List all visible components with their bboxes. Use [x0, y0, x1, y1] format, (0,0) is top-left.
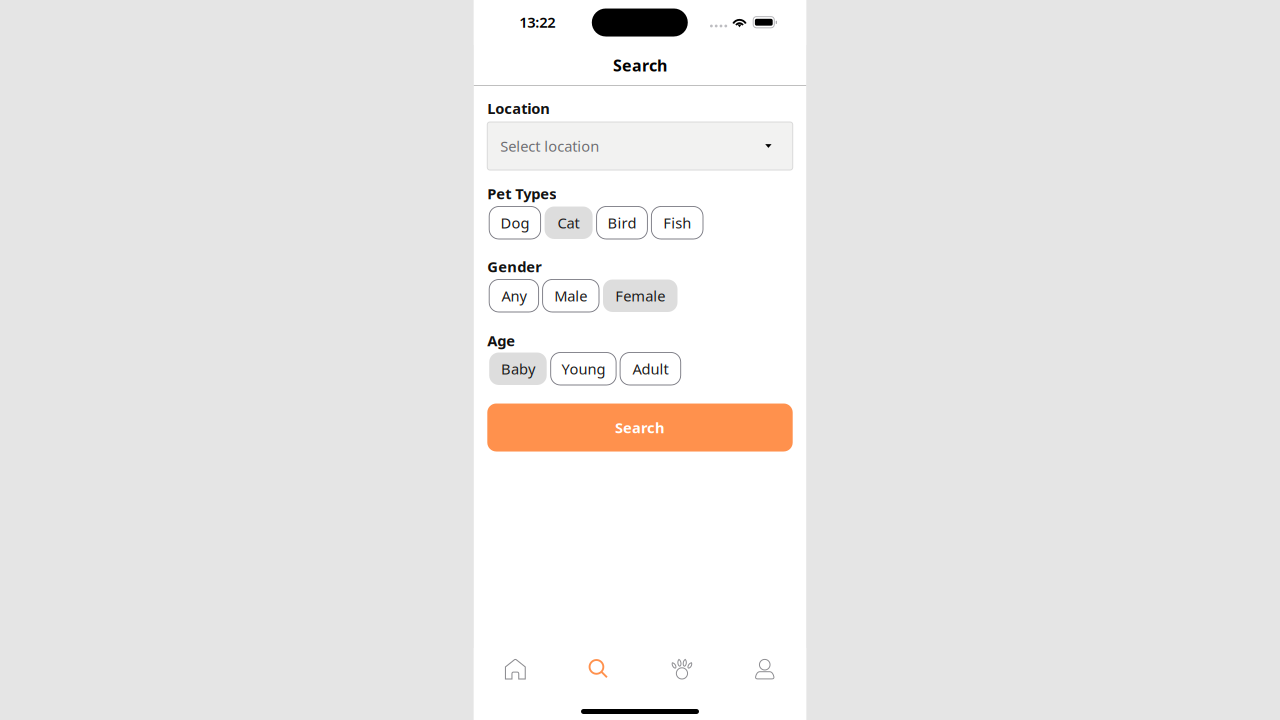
button[interactable]: Select location — [487, 122, 793, 170]
button[interactable]: Female — [603, 279, 677, 312]
staticText: Young — [561, 359, 605, 378]
button[interactable]: Bird — [597, 206, 647, 239]
staticText: Baby — [501, 359, 535, 378]
staticText: Cat — [558, 213, 580, 232]
staticText: Search — [615, 418, 665, 437]
staticText: Bird — [607, 213, 636, 232]
button[interactable]: Adult — [620, 352, 681, 385]
staticText: Any — [501, 286, 526, 305]
staticText: Adult — [632, 359, 668, 378]
button[interactable]: Any — [489, 279, 539, 312]
staticText: Pet Types — [487, 184, 556, 203]
button[interactable]: Male — [543, 279, 599, 312]
staticText: Select location — [500, 136, 599, 156]
button[interactable]: Baby — [489, 352, 547, 385]
button[interactable]: Home — [474, 648, 557, 690]
staticText: Female — [615, 286, 665, 305]
button[interactable]: Fish — [651, 206, 703, 239]
staticText: 13:22 — [519, 12, 555, 32]
staticText: Male — [554, 286, 587, 305]
staticText: Search — [613, 55, 667, 76]
button[interactable]: Search — [487, 403, 793, 451]
staticText: Age — [487, 331, 515, 350]
staticText: Gender — [487, 257, 542, 276]
button[interactable]: Search — [557, 648, 640, 690]
button[interactable]: Dog — [489, 206, 541, 239]
staticText: Dog — [500, 213, 529, 232]
button[interactable]: Profile — [723, 648, 806, 690]
staticText: Fish — [663, 213, 691, 232]
button[interactable]: Young — [551, 352, 616, 385]
button[interactable]: Pets — [640, 648, 723, 690]
button[interactable]: Cat — [545, 206, 593, 239]
staticText: Location — [487, 99, 550, 118]
